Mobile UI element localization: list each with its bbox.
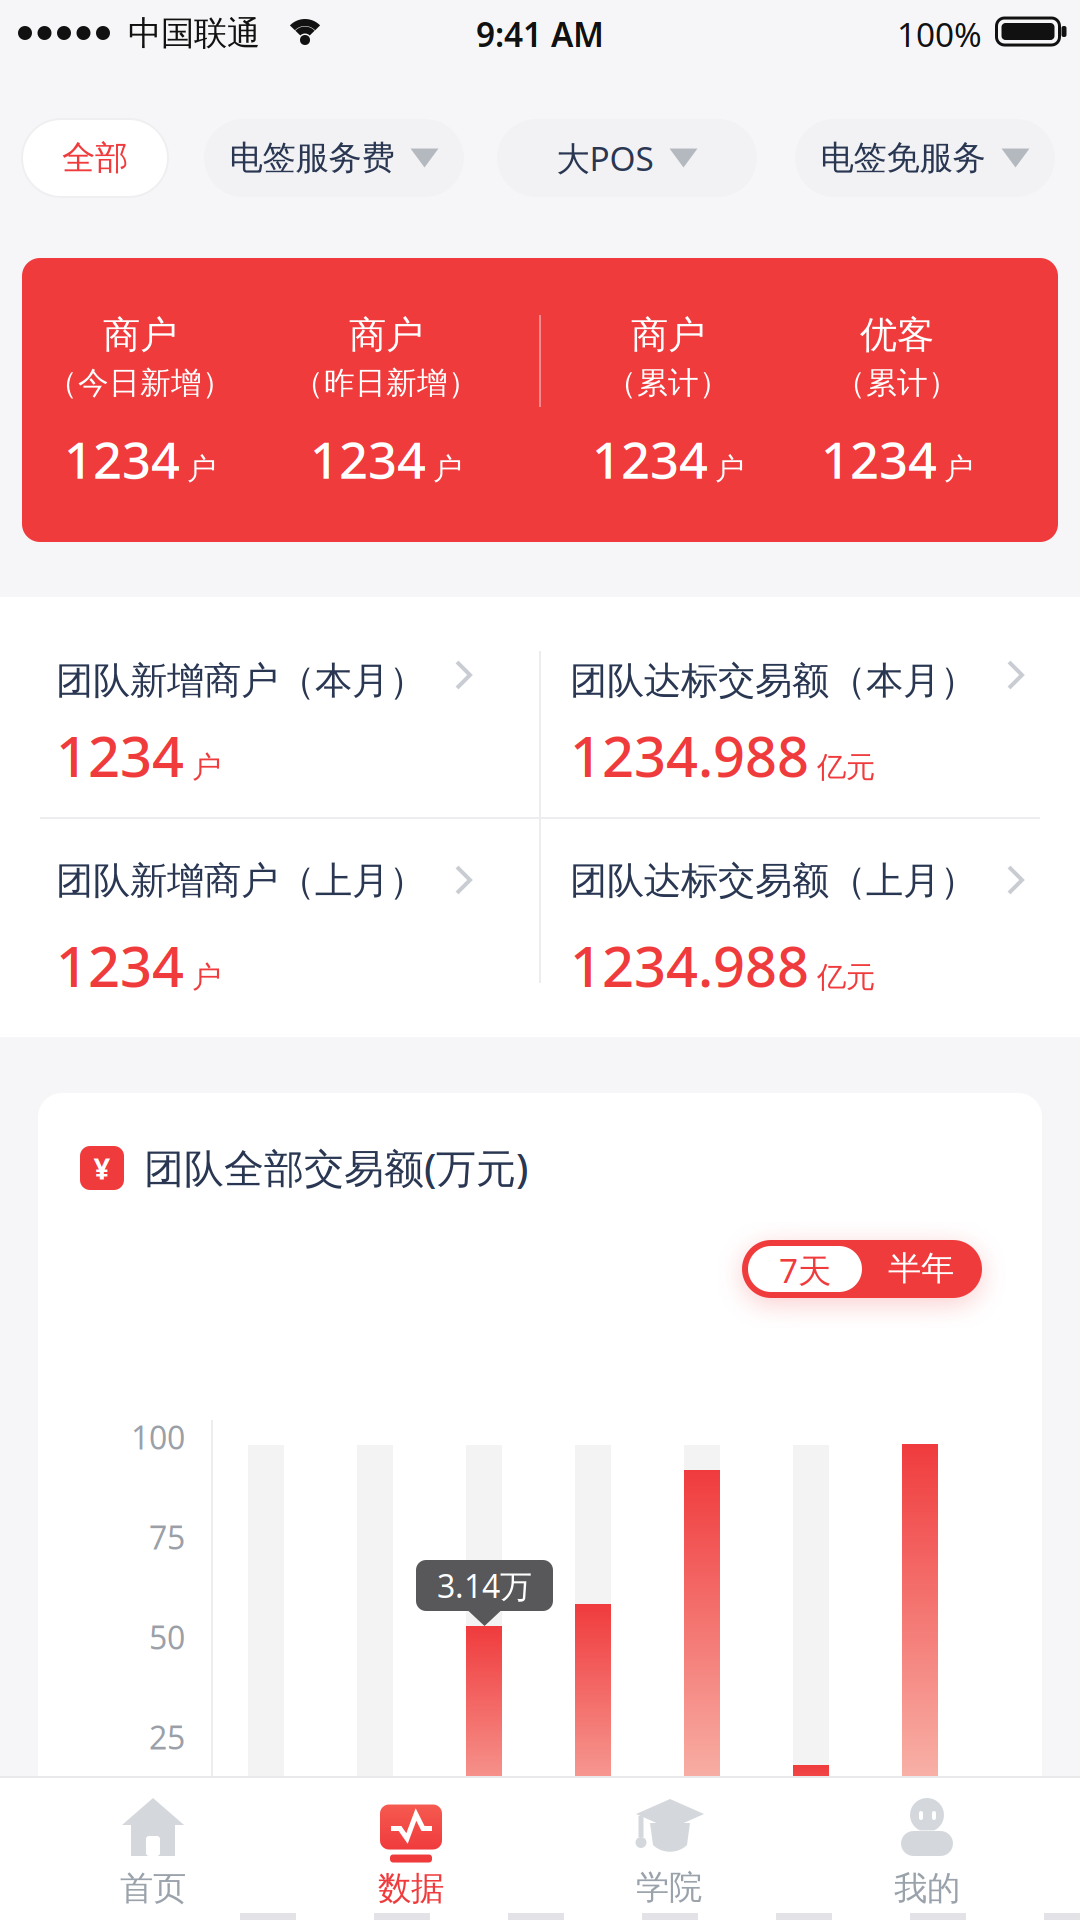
staticText: 户 xyxy=(715,451,744,487)
staticText: 1234 xyxy=(64,425,180,493)
staticText: 75 xyxy=(149,1516,185,1558)
staticText: 中国联通 xyxy=(128,13,260,54)
staticText: 100 xyxy=(131,1416,185,1458)
staticText: 1234 xyxy=(310,425,426,493)
staticText: 大POS xyxy=(556,136,653,180)
staticText: 1234 xyxy=(821,425,937,493)
staticText: 亿元 xyxy=(817,959,875,995)
staticText: 户 xyxy=(433,451,462,487)
staticText: （累计） xyxy=(606,364,730,402)
button[interactable]: 电签服务费 xyxy=(204,119,464,197)
staticText: 商户 xyxy=(103,312,177,358)
staticText: 团队达标交易额（上月） xyxy=(570,858,977,904)
staticText: 7天 xyxy=(779,1248,831,1292)
staticText: 1234.988 xyxy=(570,718,809,792)
staticText: 亿元 xyxy=(817,749,875,785)
button[interactable]: 首页 xyxy=(24,1798,282,1909)
staticText: 户 xyxy=(192,959,221,995)
staticText: 学院 xyxy=(636,1867,702,1908)
staticText: 团队新增商户（上月） xyxy=(56,858,426,904)
staticText: 户 xyxy=(192,749,221,785)
staticText: 团队新增商户（本月） xyxy=(56,658,426,704)
staticText: 1234 xyxy=(592,425,708,493)
staticText: 1234 xyxy=(56,928,184,1002)
button[interactable]: 团队达标交易额（本月） xyxy=(540,597,1080,816)
staticText: 电签服务费 xyxy=(229,137,394,178)
staticText: 25 xyxy=(149,1716,185,1758)
staticText: （累计） xyxy=(835,364,959,402)
staticText: 50 xyxy=(149,1616,185,1658)
staticText: 首页 xyxy=(120,1868,186,1909)
button[interactable]: 大POS xyxy=(497,119,757,197)
staticText: 团队全部交易额(万元) xyxy=(144,1141,528,1194)
staticText: 电签免服务 xyxy=(820,137,985,178)
staticText: 优客 xyxy=(860,312,934,358)
button[interactable]: 数据 xyxy=(282,1798,540,1909)
staticText: 3.14万 xyxy=(437,1564,532,1607)
staticText: ¥ xyxy=(93,1148,110,1187)
staticText: 团队达标交易额（本月） xyxy=(570,658,977,704)
button[interactable]: 我的 xyxy=(798,1798,1056,1909)
button[interactable]: 团队新增商户（本月） xyxy=(0,597,540,816)
staticText: 数据 xyxy=(378,1868,444,1909)
staticText: 半年 xyxy=(888,1248,954,1289)
staticText: 1234.988 xyxy=(570,928,809,1002)
staticText: （今日新增） xyxy=(47,364,233,402)
button[interactable]: 团队新增商户（上月） xyxy=(0,818,540,1037)
button[interactable]: 电签免服务 xyxy=(795,119,1055,197)
staticText: 1234 xyxy=(56,718,184,792)
staticText: 户 xyxy=(944,451,973,487)
staticText: 我的 xyxy=(894,1868,960,1909)
staticText: 商户 xyxy=(631,312,705,358)
staticText: 商户 xyxy=(349,312,423,358)
button[interactable]: 全部 xyxy=(22,119,168,197)
button[interactable]: 7天 xyxy=(742,1240,982,1298)
button[interactable]: 学院 xyxy=(540,1799,798,1908)
staticText: （昨日新增） xyxy=(293,364,479,402)
staticText: 户 xyxy=(187,451,216,487)
staticText: 100% xyxy=(897,12,982,56)
staticText: 9:41 AM xyxy=(476,12,604,56)
staticText: 全部 xyxy=(62,137,128,178)
button[interactable]: 团队达标交易额（上月） xyxy=(540,818,1080,1037)
